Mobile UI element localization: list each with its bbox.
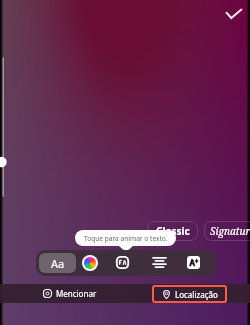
staticText: Aa <box>51 256 65 271</box>
button[interactable]: Colour <box>82 255 98 271</box>
button[interactable]: Localização <box>152 285 227 303</box>
staticText: Mencionar <box>56 288 97 299</box>
button[interactable]: Done <box>221 0 247 26</box>
button[interactable]: Aa <box>39 253 76 273</box>
button[interactable]: Signature <box>204 221 250 241</box>
button[interactable]: Text style <box>187 256 200 269</box>
button[interactable]: Mencionar <box>40 286 100 301</box>
button[interactable]: Classic <box>147 221 198 241</box>
staticText: Toque para animar o texto. <box>84 234 168 243</box>
staticText: Signature <box>210 224 250 238</box>
button[interactable]: Text alignment <box>153 256 166 269</box>
staticText: Classic <box>156 224 190 238</box>
button[interactable]: Text effects <box>116 256 129 269</box>
staticText: Localização <box>175 289 218 300</box>
